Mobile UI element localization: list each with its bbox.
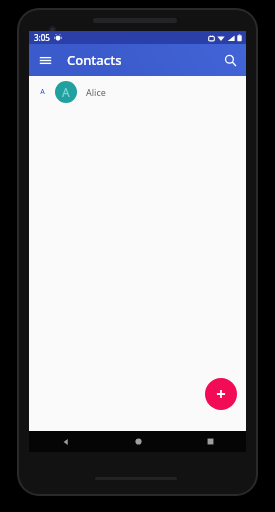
button[interactable]: Open navigation menu	[34, 49, 56, 71]
button[interactable]: A	[29, 76, 246, 107]
button[interactable]: Add contact	[205, 378, 237, 410]
button[interactable]: Recent apps	[174, 431, 246, 452]
staticText: Contacts	[67, 51, 122, 69]
staticText: Alice	[86, 86, 106, 98]
button[interactable]: Search	[219, 49, 241, 71]
staticText: 3:05	[34, 32, 50, 43]
button[interactable]: Back	[29, 431, 102, 452]
staticText: A	[62, 84, 70, 100]
button[interactable]: Home	[102, 431, 174, 452]
staticText: A	[40, 87, 45, 97]
